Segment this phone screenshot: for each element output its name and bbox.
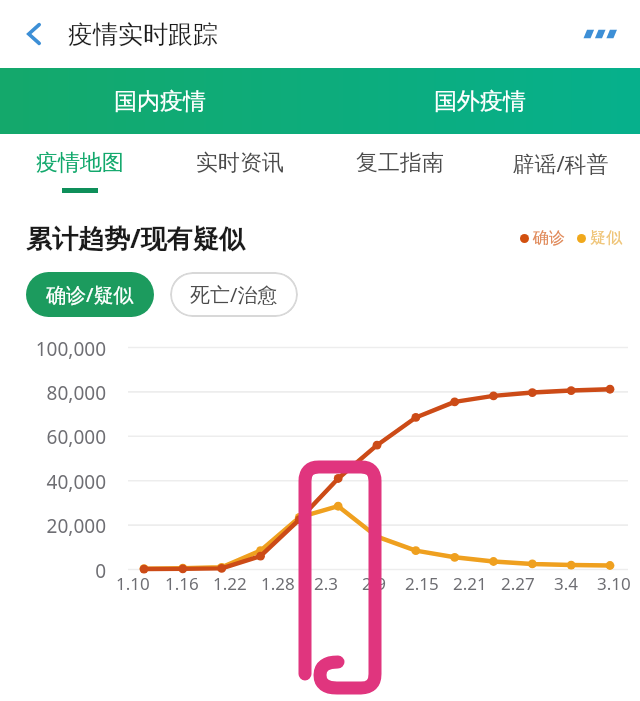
staticText: 0 bbox=[0, 558, 106, 584]
staticText: 3.10 bbox=[597, 572, 631, 595]
staticText: 20,000 bbox=[0, 513, 106, 539]
staticText: 确诊/疑似 bbox=[46, 281, 134, 308]
staticText: 疑似 bbox=[590, 228, 622, 248]
staticText: 100,000 bbox=[0, 336, 106, 362]
staticText: 1.10 bbox=[116, 572, 150, 595]
button[interactable]: More options bbox=[574, 6, 630, 62]
staticText: 疫情地图 bbox=[36, 149, 124, 177]
button[interactable]: 复工指南 bbox=[320, 149, 480, 193]
button[interactable]: 实时资讯 bbox=[160, 149, 320, 193]
staticText: 1.28 bbox=[261, 572, 295, 595]
button[interactable]: 死亡/治愈 bbox=[170, 272, 298, 317]
staticText: 2.9 bbox=[362, 572, 387, 595]
staticText: 国内疫情 bbox=[114, 87, 206, 116]
staticText: 1.16 bbox=[165, 572, 199, 595]
staticText: 2.21 bbox=[453, 572, 487, 595]
button[interactable]: 国外疫情 bbox=[320, 68, 640, 134]
staticText: 2.27 bbox=[501, 572, 535, 595]
staticText: 40,000 bbox=[0, 469, 106, 495]
staticText: 3.4 bbox=[554, 572, 579, 595]
staticText: 实时资讯 bbox=[196, 149, 284, 177]
button[interactable]: 疫情地图 bbox=[0, 149, 160, 193]
staticText: 确诊 bbox=[533, 228, 565, 248]
staticText: 疫情实时跟踪 bbox=[68, 19, 218, 50]
staticText: 复工指南 bbox=[356, 149, 444, 177]
button[interactable]: 国内疫情 bbox=[0, 68, 320, 134]
staticText: 死亡/治愈 bbox=[190, 281, 278, 308]
staticText: 80,000 bbox=[0, 380, 106, 406]
staticText: 累计趋势/现有疑似 bbox=[26, 220, 245, 256]
staticText: 60,000 bbox=[0, 424, 106, 450]
button[interactable]: 辟谣/科普 bbox=[480, 148, 640, 194]
staticText: 辟谣/科普 bbox=[512, 148, 609, 178]
staticText: 1.22 bbox=[213, 572, 247, 595]
button[interactable]: 确诊/疑似 bbox=[26, 272, 154, 317]
staticText: 2.3 bbox=[314, 572, 339, 595]
button[interactable]: Back bbox=[10, 10, 58, 58]
staticText: 国外疫情 bbox=[434, 87, 526, 116]
staticText: 2.15 bbox=[405, 572, 439, 595]
